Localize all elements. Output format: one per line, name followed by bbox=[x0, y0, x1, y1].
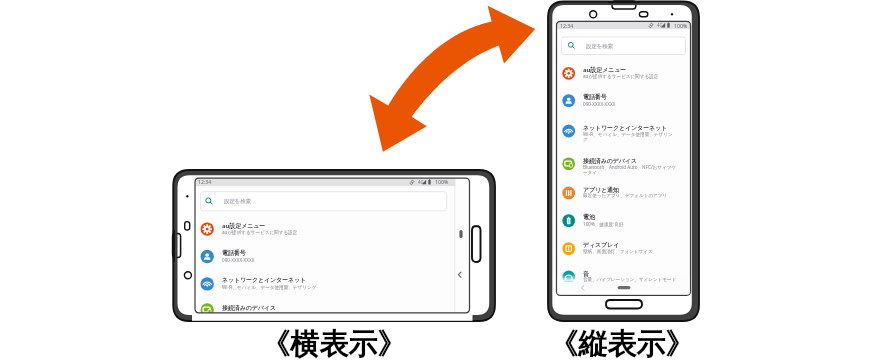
staticText: 電話番号 bbox=[222, 249, 246, 256]
staticText: auが提供するサービスに関する設定 bbox=[583, 73, 659, 79]
staticText: 4G bbox=[657, 22, 663, 28]
staticText: 12:34 bbox=[198, 178, 212, 185]
staticText: 接続済みのデバイス bbox=[222, 304, 276, 311]
staticText: 090-XXXX-XXXX bbox=[222, 257, 255, 263]
staticText: 音量、バイブレーション、サイレントモード bbox=[583, 277, 677, 283]
staticText: 100% bbox=[674, 22, 688, 29]
staticText: 《横表示》 bbox=[261, 326, 406, 362]
staticText: ディスプレイ bbox=[583, 241, 620, 248]
staticText: Wi-Fi、モバイル、データ使用量、テザリン bbox=[583, 131, 673, 137]
staticText: 電話番号 bbox=[583, 93, 607, 100]
staticText: au設定メニュー bbox=[222, 222, 266, 230]
staticText: 電池 bbox=[583, 213, 595, 220]
staticText: auが提供するサービスに関する設定 bbox=[222, 229, 298, 235]
staticText: グ bbox=[583, 137, 588, 143]
staticText: Wi-Fi、モバイル、データ使用量、テザリング bbox=[222, 284, 317, 290]
staticText: 《縦表示》 bbox=[549, 326, 694, 362]
staticText: ネットワークとインターネット bbox=[583, 124, 668, 131]
staticText: 090-XXXX-XXXX bbox=[583, 101, 616, 107]
staticText: 音 bbox=[583, 270, 589, 277]
staticText: 設定を検索 bbox=[224, 198, 252, 205]
staticText: 接続済みのデバイス bbox=[583, 157, 637, 164]
staticText: 壁紙、画面消灯、フォントサイズ bbox=[583, 249, 653, 255]
staticText: 100% bbox=[435, 178, 449, 185]
staticText: 12:34 bbox=[560, 22, 574, 29]
staticText: アプリと通知 bbox=[583, 186, 619, 193]
staticText: Bluetooth、Android Auto、NFC/おサイフケ bbox=[583, 164, 677, 170]
staticText: 100%、健康度:良好 bbox=[583, 221, 624, 227]
staticText: 設定を検索 bbox=[586, 43, 614, 50]
staticText: au設定メニュー bbox=[583, 66, 627, 74]
staticText: 4G bbox=[418, 179, 424, 185]
staticText: 最近使ったアプリ、デフォルトのアプリ bbox=[583, 193, 668, 199]
staticText: ネットワークとインターネット bbox=[222, 276, 307, 283]
staticText: ータイ bbox=[583, 170, 597, 176]
